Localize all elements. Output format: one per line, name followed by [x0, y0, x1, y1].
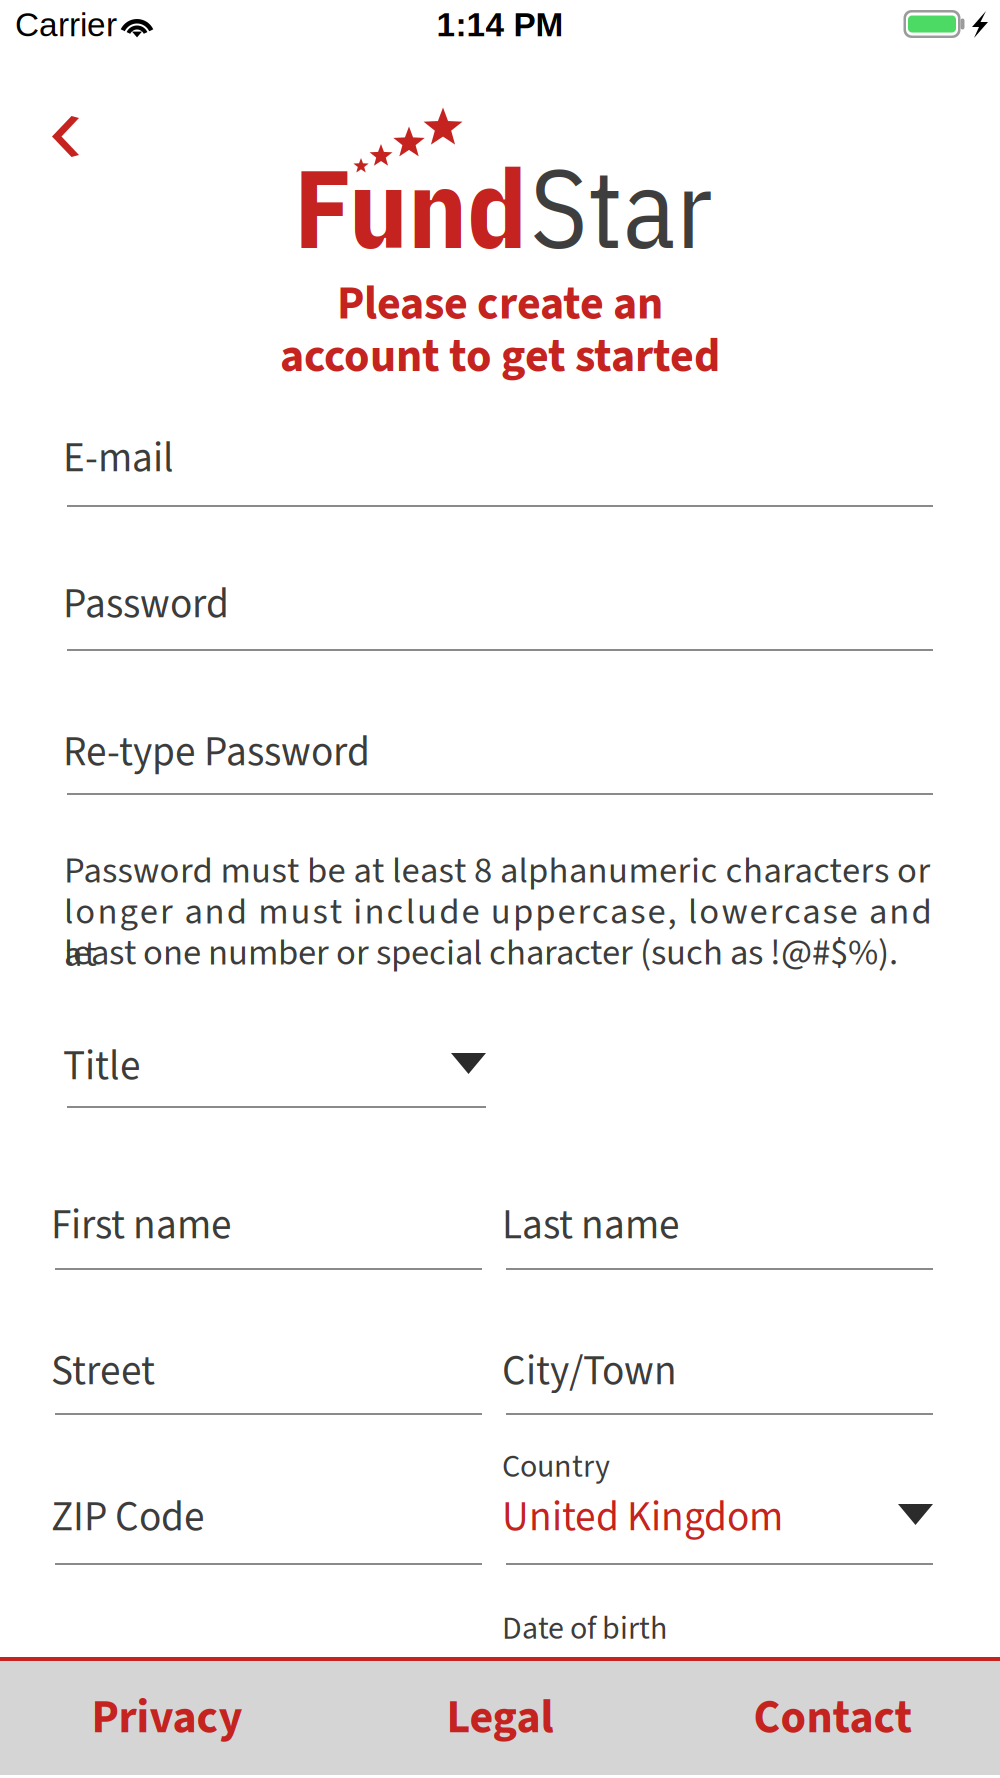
button[interactable]: First name: [55, 1180, 482, 1270]
staticText: 1:14 PM: [436, 6, 563, 43]
staticText: Last name: [502, 1196, 680, 1255]
staticText: account to get started: [280, 330, 720, 383]
button[interactable]: ZIP Code: [55, 1472, 482, 1565]
staticText: longer and must include uppercase, lower…: [64, 891, 975, 933]
staticText: Re-type Password: [63, 723, 370, 782]
staticText: Star: [530, 136, 712, 278]
button[interactable]: Last name: [506, 1180, 933, 1270]
staticText: Street: [51, 1342, 155, 1401]
button[interactable]: Re-type Password: [67, 707, 933, 795]
staticText: Legal: [446, 1685, 553, 1751]
staticText: Contact: [753, 1685, 912, 1751]
staticText: Title: [63, 1037, 141, 1096]
button[interactable]: E-mail: [67, 413, 933, 507]
staticText: First name: [51, 1196, 232, 1255]
staticText: Privacy: [91, 1685, 242, 1751]
button[interactable]: Back: [28, 94, 103, 179]
staticText: Date of birth: [502, 1606, 667, 1652]
button[interactable]: Legal: [334, 1661, 666, 1775]
staticText: least one number or special character (s…: [64, 932, 898, 974]
button[interactable]: Country: [506, 1472, 933, 1565]
button[interactable]: Password: [67, 559, 933, 651]
button[interactable]: Title: [67, 1021, 486, 1108]
button[interactable]: Street: [55, 1326, 482, 1415]
staticText: United Kingdom: [502, 1488, 783, 1547]
staticText: Password must be at least 8 alphanumeric…: [64, 850, 930, 892]
button[interactable]: Contact: [666, 1661, 1000, 1775]
staticText: City/Town: [502, 1342, 677, 1401]
button[interactable]: Privacy: [0, 1661, 334, 1775]
staticText: Fund: [294, 136, 527, 278]
staticText: Password: [63, 575, 229, 634]
staticText: Carrier: [15, 6, 117, 43]
staticText: E-mail: [63, 429, 174, 488]
staticText: ZIP Code: [51, 1488, 205, 1547]
button[interactable]: City/Town: [506, 1326, 933, 1415]
staticText: Please create an: [337, 278, 663, 330]
staticText: Country: [502, 1444, 610, 1490]
